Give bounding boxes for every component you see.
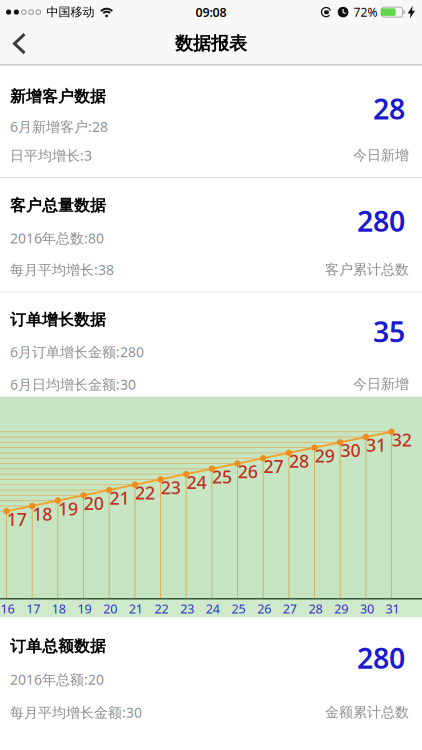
- staticText: 21: [109, 486, 129, 510]
- staticText: 2016年总额:20: [10, 670, 104, 689]
- staticText: 28: [308, 600, 322, 617]
- staticText: 25: [212, 465, 232, 489]
- staticText: 22: [135, 480, 155, 505]
- staticText: 6月日均增长金额:30: [10, 375, 136, 394]
- staticText: 19: [77, 600, 91, 617]
- staticText: 28: [373, 89, 405, 128]
- staticText: 21: [129, 600, 143, 617]
- staticText: 29: [315, 443, 335, 468]
- staticText: 280: [357, 638, 405, 677]
- staticText: 数据报表: [175, 32, 247, 55]
- staticText: 30: [360, 600, 374, 617]
- staticText: 每月平均增长金额:30: [10, 703, 142, 722]
- staticText: 订单增长数据: [10, 310, 106, 330]
- staticText: 每月平均增长:38: [10, 260, 114, 279]
- staticText: 今日新增: [353, 146, 409, 164]
- staticText: 28: [289, 449, 309, 473]
- staticText: 16: [0, 600, 14, 617]
- staticText: 26: [238, 459, 258, 483]
- staticText: 今日新增: [353, 375, 409, 393]
- staticText: 日平均增长:3: [10, 146, 92, 165]
- staticText: 19: [58, 496, 78, 521]
- staticText: 31: [386, 600, 400, 617]
- staticText: 32: [392, 427, 412, 452]
- staticText: 20: [84, 491, 104, 515]
- staticText: 31: [366, 433, 386, 457]
- staticText: 订单总额数据: [10, 636, 106, 656]
- staticText: 26: [257, 600, 271, 617]
- staticText: 27: [263, 454, 283, 478]
- staticText: 2016年总数:80: [10, 229, 104, 248]
- staticText: 17: [26, 600, 40, 617]
- staticText: 09:08: [195, 4, 226, 21]
- staticText: 35: [373, 312, 405, 351]
- staticText: 20: [103, 600, 117, 617]
- staticText: 新增客户数据: [10, 87, 106, 106]
- staticText: 24: [186, 470, 206, 494]
- button[interactable]: [8, 28, 40, 60]
- staticText: 客户累计总数: [325, 261, 409, 278]
- staticText: 6月新增客户:28: [10, 117, 108, 136]
- staticText: 6月订单增长金额:280: [10, 342, 144, 361]
- staticText: 23: [180, 600, 194, 617]
- staticText: 29: [334, 600, 348, 617]
- staticText: 25: [231, 600, 245, 617]
- staticText: 30: [340, 438, 360, 462]
- staticText: 金额累计总数: [325, 703, 409, 721]
- staticText: 22: [154, 600, 168, 617]
- staticText: 客户总量数据: [10, 196, 106, 215]
- staticText: 18: [52, 600, 66, 617]
- staticText: 中国移动: [47, 4, 95, 20]
- staticText: 17: [7, 507, 27, 531]
- staticText: 72%: [354, 4, 378, 20]
- staticText: 23: [161, 475, 181, 499]
- staticText: 18: [32, 502, 52, 526]
- staticText: 280: [357, 201, 405, 240]
- staticText: 24: [206, 600, 220, 617]
- staticText: 27: [283, 600, 297, 617]
